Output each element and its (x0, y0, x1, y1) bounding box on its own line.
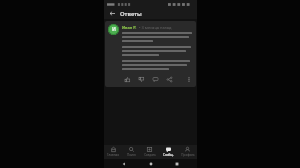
staticText: Главная (107, 153, 119, 157)
staticText: Ответы (120, 10, 142, 18)
button[interactable]: Share (163, 75, 175, 84)
button[interactable]: Home (144, 159, 158, 168)
button[interactable]: Поиск (122, 145, 140, 159)
staticText: И (112, 26, 116, 33)
button[interactable]: Главная (104, 145, 122, 159)
staticText: Иван Р. (122, 25, 137, 30)
staticText: Сообщ. (163, 153, 174, 157)
button[interactable]: Recents (170, 159, 184, 168)
button[interactable]: Dislike (135, 75, 147, 84)
staticText: Поиск (127, 153, 136, 157)
button[interactable]: Профиль (178, 145, 197, 159)
button[interactable]: И (105, 21, 196, 87)
button[interactable]: Сообщ. (159, 145, 178, 159)
button[interactable]: More options (185, 75, 193, 84)
button[interactable]: Создать (140, 145, 159, 159)
staticText: Профиль (181, 153, 195, 157)
staticText: Создать (144, 153, 156, 157)
button[interactable]: Comment (149, 75, 161, 84)
staticText: • 3 месяца назад (139, 25, 172, 30)
button[interactable]: Back (117, 159, 131, 168)
button[interactable]: Like (121, 75, 133, 84)
button[interactable]: Back (108, 9, 117, 18)
